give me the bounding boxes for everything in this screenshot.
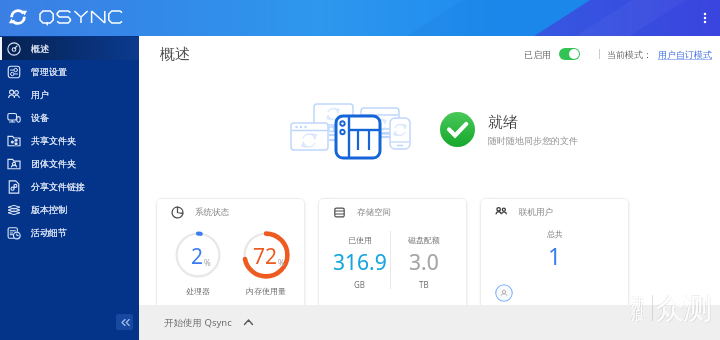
staticText: 随时随地同步您的文件 <box>488 135 578 146</box>
button[interactable]: User avatar <box>495 284 513 302</box>
button[interactable]: 版本控制 <box>0 198 139 221</box>
staticText: 1 <box>548 240 562 271</box>
staticText: 概述 <box>160 45 190 64</box>
button[interactable]: 概述 <box>0 37 139 60</box>
staticText: 团体文件夹 <box>31 158 76 169</box>
staticText: 用户 <box>31 89 49 100</box>
staticText: TB <box>419 279 429 290</box>
staticText: % <box>204 257 211 268</box>
button[interactable]: 开始使用 Qsync <box>164 316 254 329</box>
staticText: 联机用户 <box>519 207 553 218</box>
button[interactable]: 系统状态 <box>156 198 305 310</box>
staticText: 存储空间 <box>357 207 391 218</box>
button[interactable]: 存储空间 <box>318 198 467 310</box>
staticText: 版本控制 <box>31 204 67 215</box>
staticText: 新 浪 <box>630 293 643 323</box>
staticText: 已使用 <box>348 235 372 245</box>
button[interactable]: 管理设置 <box>0 60 139 83</box>
button[interactable]: 活动细节 <box>0 221 139 244</box>
button[interactable]: 用户自订模式 <box>658 49 712 60</box>
staticText: 总共 <box>547 229 563 239</box>
staticText: 磁盘配额 <box>408 235 440 245</box>
button[interactable]: 联机用户 <box>480 198 629 310</box>
staticText: 活动细节 <box>31 227 67 238</box>
staticText: 内存使用量 <box>246 286 286 296</box>
staticText: 新 浪 <box>631 294 644 324</box>
staticText: 72 <box>253 242 278 271</box>
staticText: 众测 <box>655 290 711 325</box>
button[interactable]: 共享文件夹 <box>0 129 139 152</box>
staticText: 新 浪 <box>632 295 645 325</box>
staticText: GB <box>354 279 366 290</box>
staticText: 系统状态 <box>195 207 229 218</box>
staticText: 3.0 <box>409 248 439 277</box>
staticText: 316.9 <box>333 248 387 277</box>
staticText: 概述 <box>31 43 49 54</box>
staticText: 共享文件夹 <box>31 135 76 146</box>
button[interactable]: Collapse sidebar <box>116 314 133 330</box>
staticText: 当前模式： <box>607 49 652 60</box>
staticText: 2 <box>191 242 204 271</box>
staticText: 设备 <box>31 112 49 123</box>
staticText: 处理器 <box>186 286 210 296</box>
staticText: 已启用 <box>524 49 551 60</box>
staticText: 就绪 <box>488 113 518 132</box>
button[interactable]: 分享文件链接 <box>0 175 139 198</box>
button[interactable]: 设备 <box>0 106 139 129</box>
staticText: % <box>278 257 285 268</box>
button[interactable]: 用户 <box>0 83 139 106</box>
staticText: 分享文件链接 <box>31 181 85 192</box>
staticText: 管理设置 <box>31 66 67 77</box>
button[interactable]: 已启用 <box>524 48 580 60</box>
staticText: 开始使用 Qsync <box>164 316 232 329</box>
button[interactable]: 团体文件夹 <box>0 152 139 175</box>
button[interactable]: More options <box>693 6 717 30</box>
staticText: 众测 <box>657 292 713 327</box>
staticText: 众测 <box>656 291 712 326</box>
